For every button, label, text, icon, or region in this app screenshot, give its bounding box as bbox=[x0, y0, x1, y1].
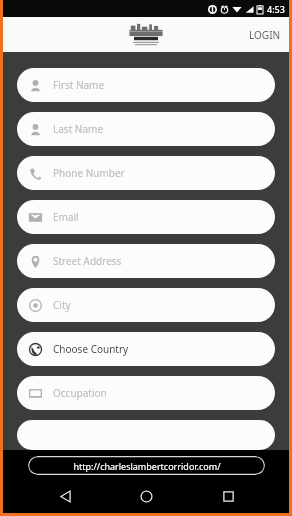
button[interactable]: Choose Country bbox=[17, 332, 275, 366]
button[interactable]: Back bbox=[45, 480, 85, 513]
staticText: Last Name bbox=[53, 122, 104, 136]
button[interactable]: Last Name bbox=[17, 112, 275, 146]
staticText: First Name bbox=[53, 78, 105, 92]
staticText: Street Address bbox=[53, 254, 122, 268]
staticText: LOGIN bbox=[249, 28, 281, 42]
staticText: Email bbox=[53, 210, 79, 224]
staticText: City bbox=[53, 298, 71, 312]
button[interactable]: Street Address bbox=[17, 244, 275, 278]
staticText: Phone Number bbox=[53, 166, 125, 180]
staticText: http://charleslambertcorridor.com/ bbox=[73, 460, 221, 472]
button[interactable]: City bbox=[17, 288, 275, 322]
button[interactable]: LOGIN bbox=[241, 22, 289, 48]
staticText: Choose Country bbox=[53, 342, 129, 356]
button[interactable]: Occupation bbox=[17, 376, 275, 410]
staticText: Occupation bbox=[53, 386, 107, 400]
staticText: 4:53 bbox=[267, 3, 285, 15]
button[interactable] bbox=[17, 420, 275, 450]
button[interactable]: First Name bbox=[17, 68, 275, 102]
button[interactable]: Email bbox=[17, 200, 275, 234]
button[interactable]: Phone Number bbox=[17, 156, 275, 190]
button[interactable]: http://charleslambertcorridor.com/ bbox=[28, 456, 265, 475]
button[interactable]: Home bbox=[126, 480, 166, 513]
button[interactable]: Recent apps bbox=[208, 480, 248, 513]
